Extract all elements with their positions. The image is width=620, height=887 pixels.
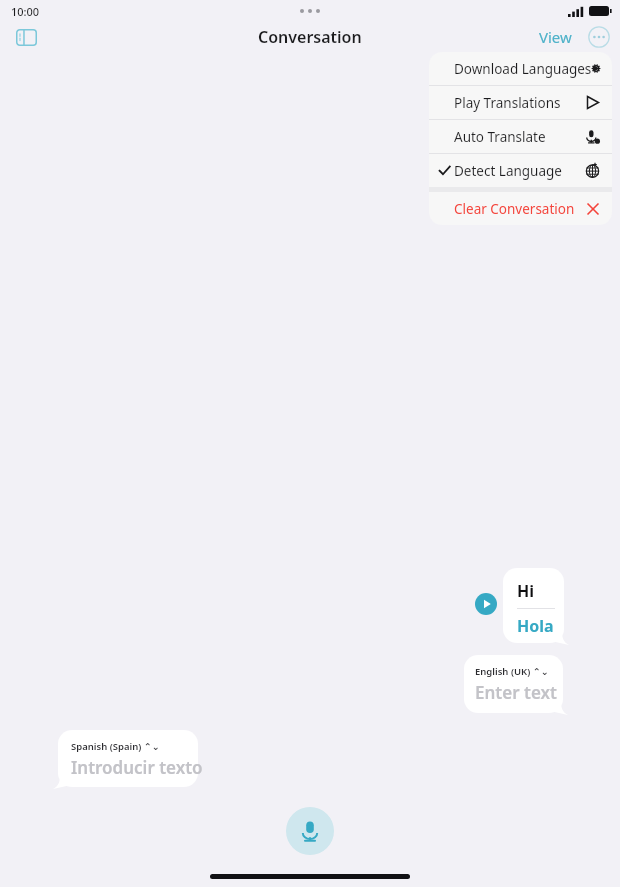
staticText: Enter text — [475, 681, 557, 704]
staticText: Spanish (Spain) ⌃⌄ — [71, 740, 160, 753]
button[interactable]: Spanish (Spain) ⌃⌄ — [58, 730, 203, 787]
staticText: 10:00 — [11, 4, 40, 19]
staticText: Hi — [517, 580, 535, 602]
button[interactable]: Play Translations — [429, 86, 612, 119]
button[interactable]: Auto Translate — [429, 120, 612, 153]
button[interactable]: English (UK) ⌃⌄ — [464, 655, 563, 713]
staticText: Play Translations — [454, 94, 561, 112]
button[interactable]: Sidebar — [10, 21, 42, 53]
staticText: View — [539, 27, 572, 47]
staticText: Download Languages — [454, 60, 592, 78]
staticText: Auto Translate — [454, 128, 546, 146]
staticText: English (UK) ⌃⌄ — [475, 665, 549, 678]
staticText: Hola — [517, 615, 554, 637]
button[interactable]: Play translation — [475, 593, 497, 615]
button[interactable]: Record — [286, 807, 334, 855]
staticText: Clear Conversation — [454, 200, 575, 218]
button[interactable]: View — [533, 23, 578, 51]
staticText: Conversation — [258, 26, 362, 48]
button[interactable]: Detect Language — [429, 154, 612, 187]
button[interactable]: Clear Conversation — [429, 192, 612, 225]
staticText: Introducir texto — [71, 756, 203, 779]
staticText: Detect Language — [454, 162, 562, 180]
button[interactable]: More options — [586, 24, 612, 50]
button[interactable]: Download Languages — [429, 52, 612, 85]
